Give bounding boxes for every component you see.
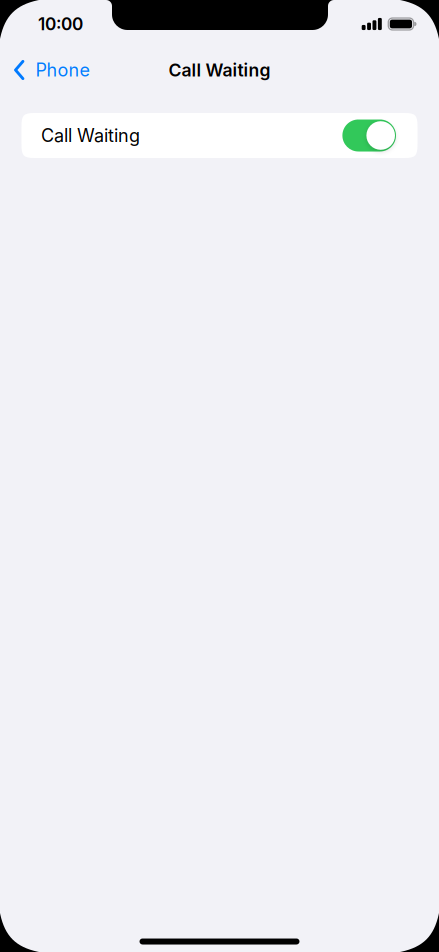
- staticText: Phone: [36, 59, 90, 81]
- button[interactable]: Call Waiting: [21, 113, 417, 158]
- button[interactable]: Call Waiting, on: [342, 119, 396, 151]
- button[interactable]: Phone: [0, 48, 102, 92]
- staticText: Call Waiting: [168, 59, 270, 81]
- staticText: 10:00: [38, 14, 83, 34]
- staticText: Call Waiting: [41, 125, 140, 146]
